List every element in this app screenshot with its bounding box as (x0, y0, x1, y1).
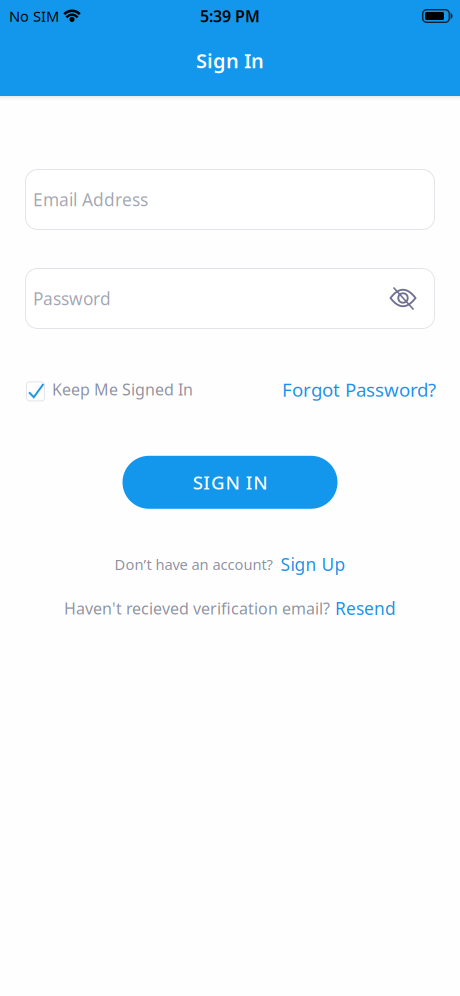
staticText: Keep Me Signed In (52, 379, 193, 400)
button[interactable]: Sign Up (280, 553, 345, 576)
staticText: Sign In (196, 47, 264, 74)
staticText: Email Address (33, 188, 148, 211)
staticText: 5:39 PM (200, 5, 260, 27)
staticText: Resend (335, 597, 396, 620)
button[interactable]: Show password (389, 286, 417, 310)
button[interactable]: Forgot Password? (282, 377, 436, 402)
button[interactable]: Password (25, 268, 435, 329)
staticText: Password (33, 287, 111, 310)
button[interactable]: Email Address (25, 169, 435, 230)
button[interactable]: Keep Me Signed In (26, 377, 193, 401)
staticText: Don’t have an account? (114, 555, 272, 574)
staticText: No SIM (9, 6, 59, 26)
staticText: Haven't recieved verification email? (64, 598, 330, 619)
button[interactable]: SIGN IN (122, 456, 337, 509)
staticText: Sign Up (280, 553, 345, 576)
staticText: SIGN IN (193, 470, 267, 495)
button[interactable]: Resend (335, 597, 396, 620)
staticText: Forgot Password? (282, 377, 436, 402)
